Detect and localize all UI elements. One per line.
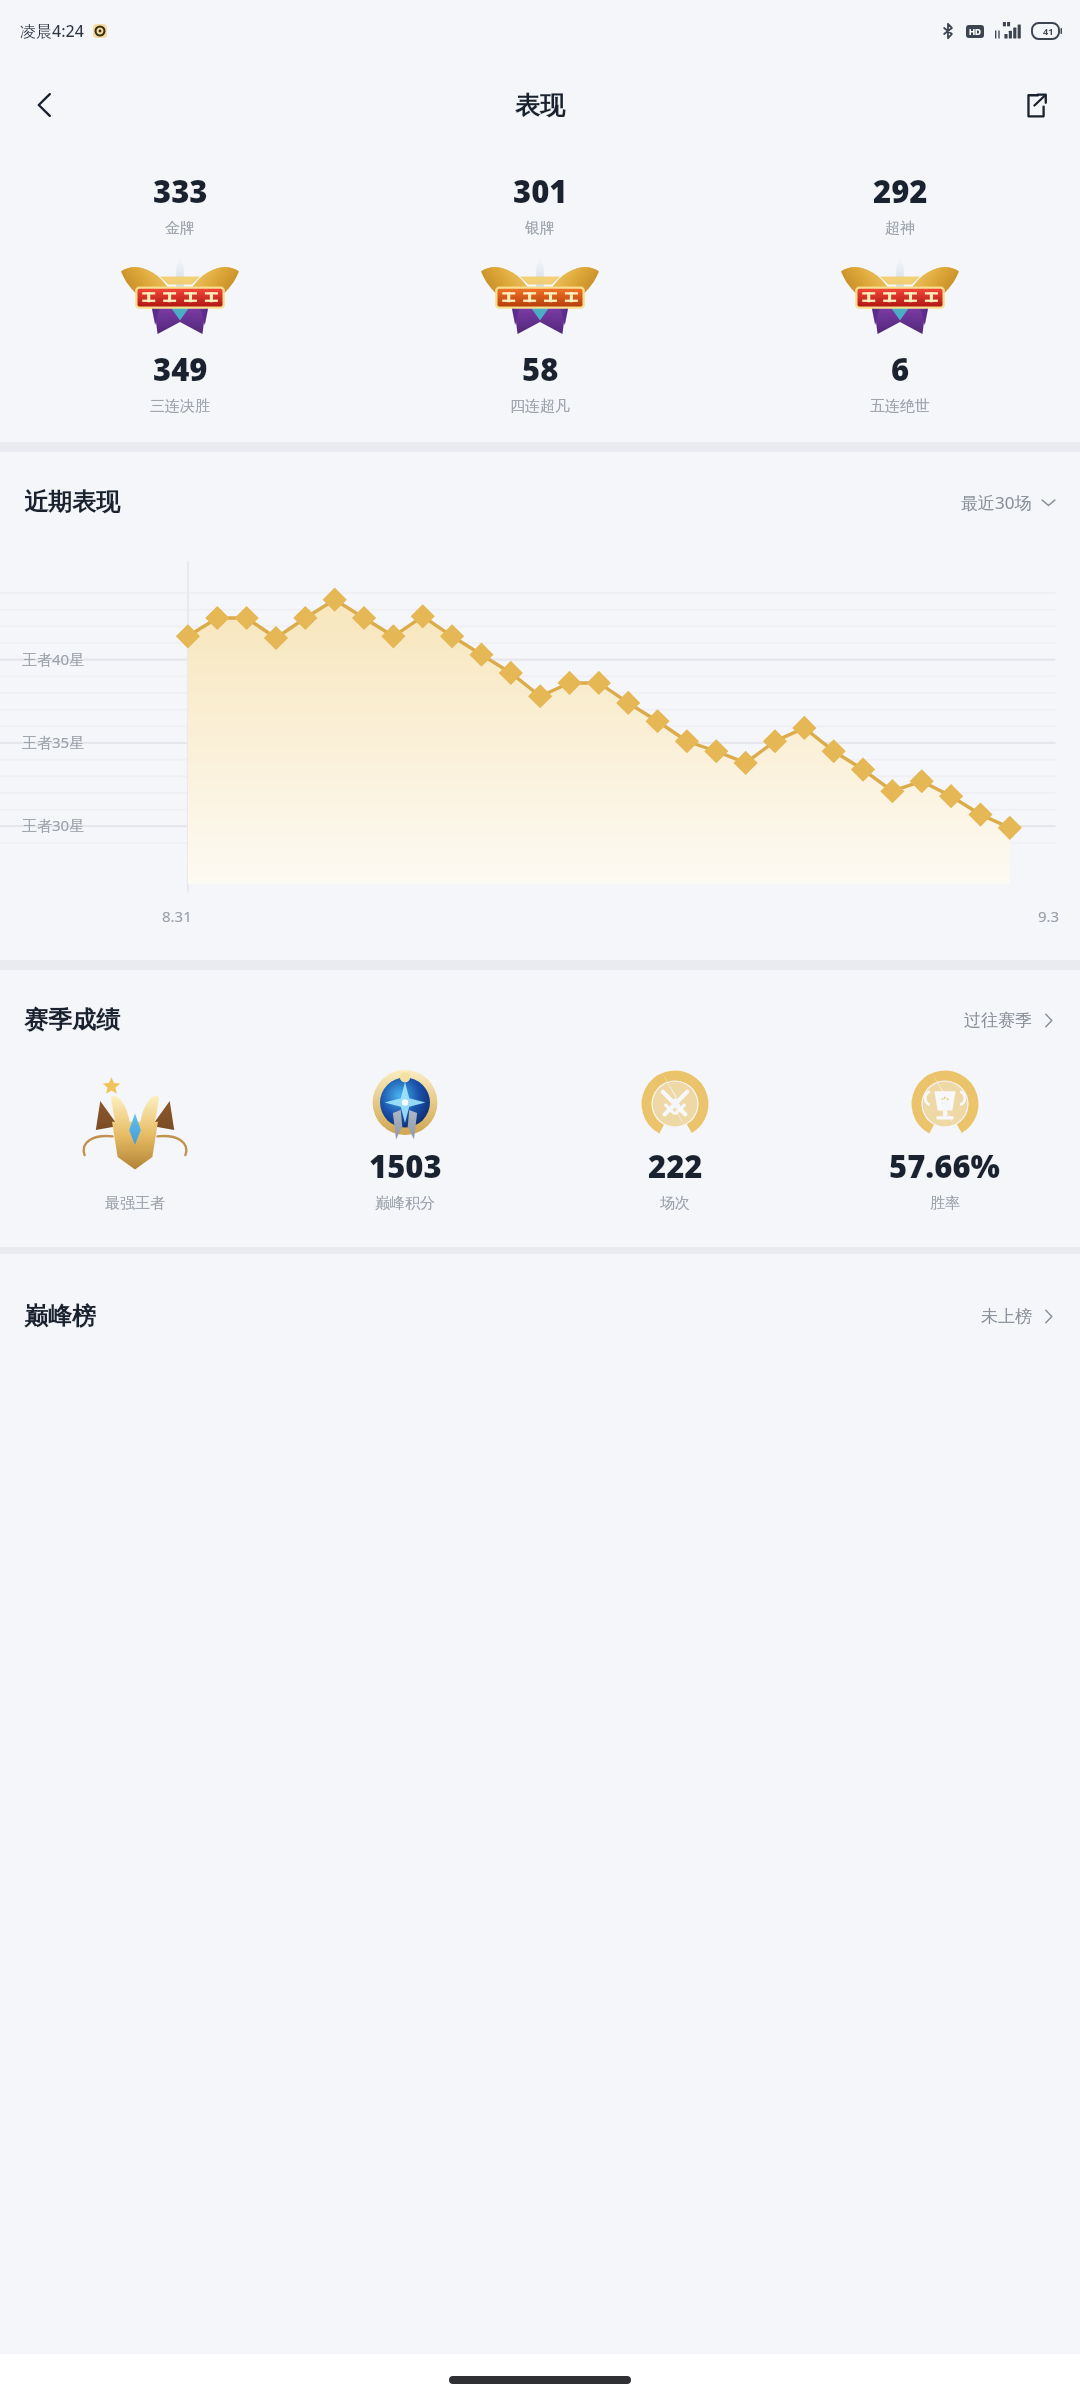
staticText: 9.3 [1038,906,1060,926]
staticText: 57.66% [889,1145,1001,1187]
button[interactable]: 57.66% [810,1072,1080,1213]
staticText: HD [969,26,981,37]
button[interactable]: 333 [0,170,360,238]
button[interactable]: 最近30场 [961,491,1056,514]
button[interactable]: 1503 [270,1070,540,1213]
staticText: 胜率 [930,1194,960,1213]
staticText: 6 [891,348,910,390]
staticText: 凌晨4:24 [20,20,84,42]
staticText: 8.31 [162,906,192,926]
button[interactable]: Back [16,76,74,134]
staticText: 1503 [369,1145,442,1187]
button[interactable]: 301 [360,170,720,238]
staticText: 表现 [515,90,565,121]
staticText: 银牌 [525,219,555,238]
staticText: 王者30星 [22,815,85,835]
staticText: 巅峰榜 [24,1301,96,1331]
button[interactable]: 222 [540,1072,810,1213]
staticText: 58 [522,348,559,390]
staticText: 四连超凡 [510,397,570,416]
staticText: 超神 [885,219,915,238]
staticText: 三连决胜 [150,397,210,416]
staticText: 最近30场 [961,491,1032,514]
staticText: 过往赛季 [964,1010,1032,1031]
staticText: 222 [648,1145,703,1187]
staticText: 333 [153,170,208,212]
button[interactable]: 过往赛季 [964,1010,1056,1031]
staticText: 王者35星 [22,732,85,752]
staticText: 巅峰积分 [375,1194,435,1213]
button[interactable]: 58 [360,258,720,416]
button[interactable]: 最强王者 [0,1076,270,1213]
button[interactable]: 292 [720,170,1080,238]
button[interactable]: 349 [0,258,360,416]
button[interactable]: 巅峰榜 [24,1254,1056,1378]
button[interactable]: Share [1006,76,1064,134]
staticText: 最强王者 [105,1194,165,1213]
staticText: 场次 [660,1194,690,1213]
staticText: 未上榜 [981,1306,1032,1327]
staticText: 41 [1043,25,1054,37]
staticText: 赛季成绩 [24,1005,120,1035]
staticText: 301 [513,170,568,212]
staticText: 王者40星 [22,649,85,669]
staticText: 292 [873,170,928,212]
button[interactable]: 6 [720,258,1080,416]
staticText: 近期表现 [24,487,120,517]
staticText: 金牌 [165,219,195,238]
staticText: 349 [153,348,208,390]
staticText: 五连绝世 [870,397,930,416]
